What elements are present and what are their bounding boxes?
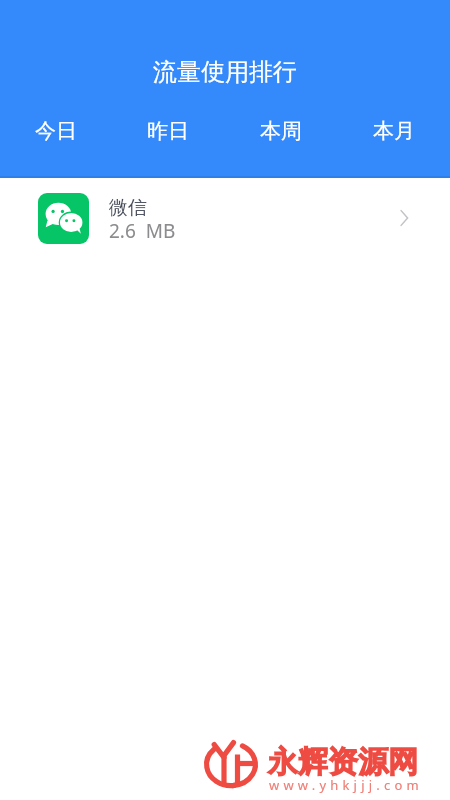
- button[interactable]: 查看详情: [392, 206, 416, 230]
- staticText: 永辉资源网: [268, 743, 418, 781]
- button[interactable]: 昨日: [112, 87, 224, 175]
- button[interactable]: 今日: [0, 87, 112, 175]
- button[interactable]: 本周: [224, 87, 337, 175]
- staticText: 流量使用排行: [153, 57, 297, 87]
- staticText: 今日: [35, 118, 77, 144]
- staticText: www.yhkjjj.com: [269, 776, 423, 794]
- staticText: 2.6 MB: [109, 218, 176, 244]
- staticText: 本月: [373, 118, 415, 144]
- staticText: 本周: [260, 118, 302, 144]
- button[interactable]: 本月: [337, 87, 450, 175]
- staticText: 微信: [109, 196, 147, 220]
- button[interactable]: 微信: [0, 180, 450, 256]
- staticText: 昨日: [147, 118, 189, 144]
